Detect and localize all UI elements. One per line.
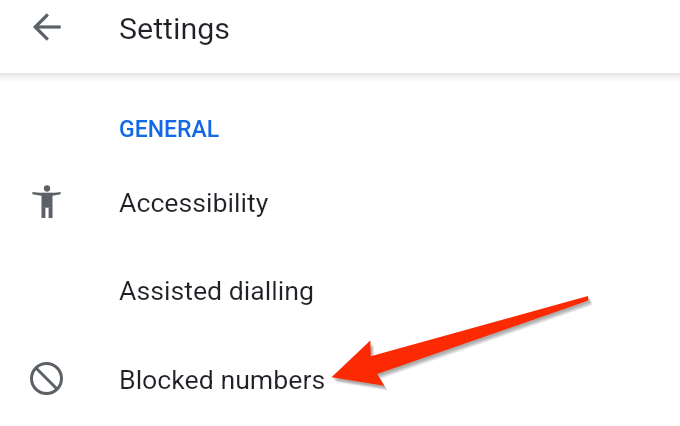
staticText: Settings	[119, 11, 230, 47]
staticText: GENERAL	[119, 116, 220, 143]
button[interactable]: Blocked numbers	[0, 335, 680, 424]
staticText: Accessibility	[119, 187, 269, 218]
staticText: Assisted dialling	[119, 275, 315, 306]
button[interactable]: Navigate up	[27, 7, 67, 47]
button[interactable]: Accessibility	[0, 158, 680, 247]
staticText: Blocked numbers	[119, 364, 326, 395]
button[interactable]: Assisted dialling	[0, 246, 680, 335]
